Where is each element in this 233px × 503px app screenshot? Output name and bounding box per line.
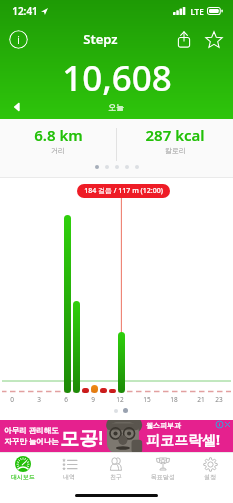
staticText: 웰스피부과 <box>146 421 181 430</box>
staticText: i <box>17 33 20 47</box>
button[interactable]: 아무리 관리해도 <box>0 420 233 452</box>
staticText: 21 <box>197 395 205 404</box>
button[interactable]: 287 kcal <box>117 119 233 177</box>
button[interactable]: Favorite <box>203 29 224 50</box>
staticText: 184 걸음 / 117 m (12:00) <box>84 186 163 196</box>
staticText: 자꾸만 늘어나는 <box>4 436 59 446</box>
staticText: 오늘 <box>108 102 124 112</box>
staticText: 10,608 <box>62 54 172 102</box>
button[interactable]: Share <box>173 29 194 50</box>
staticText: 9 <box>91 395 95 404</box>
staticText: 18 <box>170 395 178 404</box>
staticText: 내역 <box>63 473 75 481</box>
button[interactable]: 목표달성 <box>139 453 186 483</box>
staticText: 23 <box>215 395 223 404</box>
staticText: Stepz <box>83 30 118 48</box>
staticText: 287 kcal <box>145 125 205 145</box>
button[interactable]: Previous day <box>9 99 24 114</box>
staticText: 대시보드 <box>11 473 35 481</box>
staticText: 12 <box>116 395 124 404</box>
staticText: 칼로리 <box>165 146 186 155</box>
staticText: LTE <box>190 6 204 17</box>
staticText: 거리 <box>51 146 65 155</box>
staticText: 12:41 <box>12 4 38 18</box>
staticText: 아무리 관리해도 <box>4 425 59 435</box>
button[interactable]: 설정 <box>186 453 233 483</box>
button[interactable]: 내역 <box>46 453 92 483</box>
staticText: 3 <box>37 395 41 404</box>
staticText: 모공! <box>60 425 104 451</box>
button[interactable]: Information <box>9 30 28 49</box>
staticText: 15 <box>143 395 151 404</box>
staticText: 6.8 km <box>34 125 83 145</box>
staticText: 피코프락셀! <box>146 430 220 449</box>
button[interactable]: 6.8 km <box>0 119 116 177</box>
button[interactable]: 친구 <box>92 453 139 483</box>
button[interactable]: 대시보드 <box>0 453 46 483</box>
button[interactable]: 184 걸음 / 117 m (12:00) <box>77 184 170 198</box>
staticText: 0 <box>10 395 14 404</box>
staticText: 6 <box>64 395 68 404</box>
staticText: 설정 <box>204 473 216 481</box>
staticText: 친구 <box>110 473 122 481</box>
staticText: 목표달성 <box>151 473 175 481</box>
